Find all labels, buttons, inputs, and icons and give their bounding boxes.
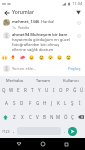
staticText: R xyxy=(24,87,27,93)
button[interactable]: W xyxy=(8,84,15,96)
staticText: C xyxy=(29,114,32,120)
staticText: mehmet_1346 xyxy=(12,19,40,24)
button[interactable]: ahmet94 Muhteşem bir kare xyxy=(3,32,83,52)
staticText: fotoğraflardan biri olmuş xyxy=(12,42,60,47)
button[interactable]: Recent apps xyxy=(61,139,71,149)
button[interactable]: Yorum ekle... xyxy=(12,66,67,71)
button[interactable]: E xyxy=(15,84,22,96)
button[interactable]: O xyxy=(57,84,64,96)
button[interactable]: Sort comments xyxy=(74,8,83,17)
button[interactable]: L xyxy=(62,96,69,110)
button[interactable]: Like xyxy=(75,19,83,27)
button[interactable]: ?123 xyxy=(0,124,11,138)
button[interactable]: Send xyxy=(68,127,77,136)
button[interactable]: Back xyxy=(14,139,24,149)
staticText: Yanıtla xyxy=(18,25,30,30)
staticText: A xyxy=(5,100,8,106)
button[interactable]: Emoji xyxy=(47,54,53,60)
button[interactable]: Fire emoji xyxy=(10,54,16,60)
staticText: N xyxy=(50,114,54,120)
button[interactable]: R xyxy=(22,84,29,96)
button[interactable]: M xyxy=(55,110,62,124)
button[interactable]: Back xyxy=(2,8,11,17)
button[interactable]: K xyxy=(55,96,62,110)
staticText: . xyxy=(64,128,66,135)
staticText: F xyxy=(29,100,32,106)
button[interactable]: Q xyxy=(0,84,8,96)
button[interactable]: P xyxy=(64,84,71,96)
staticText: E xyxy=(17,87,20,93)
button[interactable]: Kullanıcı xyxy=(57,78,85,83)
button[interactable]: Like xyxy=(75,32,83,40)
button[interactable]: Ç xyxy=(69,110,76,124)
staticText: 11:04 xyxy=(72,1,83,6)
button[interactable]: F xyxy=(26,96,34,110)
button[interactable]: Emoji xyxy=(28,54,34,60)
staticText: Paylaş xyxy=(68,66,81,71)
button[interactable]: V xyxy=(34,110,41,124)
button[interactable]: N xyxy=(48,110,55,124)
button[interactable]: Tamam xyxy=(29,78,57,83)
staticText: Kullanıcı xyxy=(63,78,79,83)
staticText: G xyxy=(36,100,40,106)
button[interactable]: Merhaba xyxy=(0,78,29,83)
button[interactable]: B xyxy=(41,110,48,124)
staticText: Ü xyxy=(80,87,84,93)
button[interactable]: Y xyxy=(36,84,43,96)
staticText: Z xyxy=(13,114,16,120)
button[interactable]: T xyxy=(29,84,36,96)
staticText: X xyxy=(21,114,24,120)
button[interactable]: Clap emoji xyxy=(19,54,25,60)
staticText: Ş xyxy=(71,100,74,106)
staticText: Ç xyxy=(71,114,74,120)
staticText: ellerine sağlık dostum xyxy=(12,47,54,52)
staticText: 1s xyxy=(12,25,16,30)
staticText: hayatımda gördüğüm en güzel xyxy=(12,37,70,42)
staticText: Q xyxy=(2,87,6,93)
staticText: Ğ xyxy=(73,87,77,93)
button[interactable]: Ö xyxy=(62,110,69,124)
button[interactable]: H xyxy=(41,96,48,110)
button[interactable]: Ü xyxy=(78,84,85,96)
button[interactable]: Z xyxy=(10,110,18,124)
staticText: Merhaba xyxy=(6,78,23,83)
button[interactable]: Ğ xyxy=(71,84,78,96)
button[interactable]: A xyxy=(2,96,10,110)
button[interactable]: Home xyxy=(38,139,48,149)
button[interactable]: Ş xyxy=(69,96,76,110)
staticText: Ö xyxy=(64,114,68,120)
button[interactable]: D xyxy=(18,96,26,110)
button[interactable]: Comma xyxy=(11,124,17,138)
staticText: Yorumlar xyxy=(12,9,35,16)
button[interactable]: C xyxy=(26,110,34,124)
button[interactable]: U xyxy=(43,84,50,96)
button[interactable]: G xyxy=(34,96,41,110)
staticText: D xyxy=(20,100,24,106)
staticText: L xyxy=(64,100,67,106)
staticText: K xyxy=(57,100,60,106)
button[interactable]: J xyxy=(48,96,55,110)
button[interactable]: X xyxy=(18,110,26,124)
button[interactable]: Emoji xyxy=(56,54,62,60)
staticText: T xyxy=(31,87,34,93)
button[interactable]: . xyxy=(61,124,68,138)
button[interactable]: Paylaş xyxy=(67,66,82,71)
staticText: ?123 xyxy=(2,129,10,134)
button[interactable]: Emoji xyxy=(65,54,71,60)
staticText: , xyxy=(13,128,15,134)
button[interactable]: S xyxy=(10,96,18,110)
button[interactable]: İ xyxy=(76,96,83,110)
button[interactable]: Emoji xyxy=(38,54,44,60)
staticText: B xyxy=(43,114,46,120)
staticText: Harika! xyxy=(41,19,55,24)
button[interactable]: Backspace xyxy=(76,110,85,124)
button[interactable]: Shift xyxy=(0,110,10,124)
staticText: J xyxy=(51,100,53,106)
button[interactable]: mehmet_1346 xyxy=(3,19,83,30)
button[interactable]: I xyxy=(50,84,57,96)
staticText: S xyxy=(13,100,16,106)
staticText: V xyxy=(36,114,39,120)
button[interactable]: Raised hands emoji xyxy=(1,54,7,60)
staticText: O xyxy=(59,87,63,93)
